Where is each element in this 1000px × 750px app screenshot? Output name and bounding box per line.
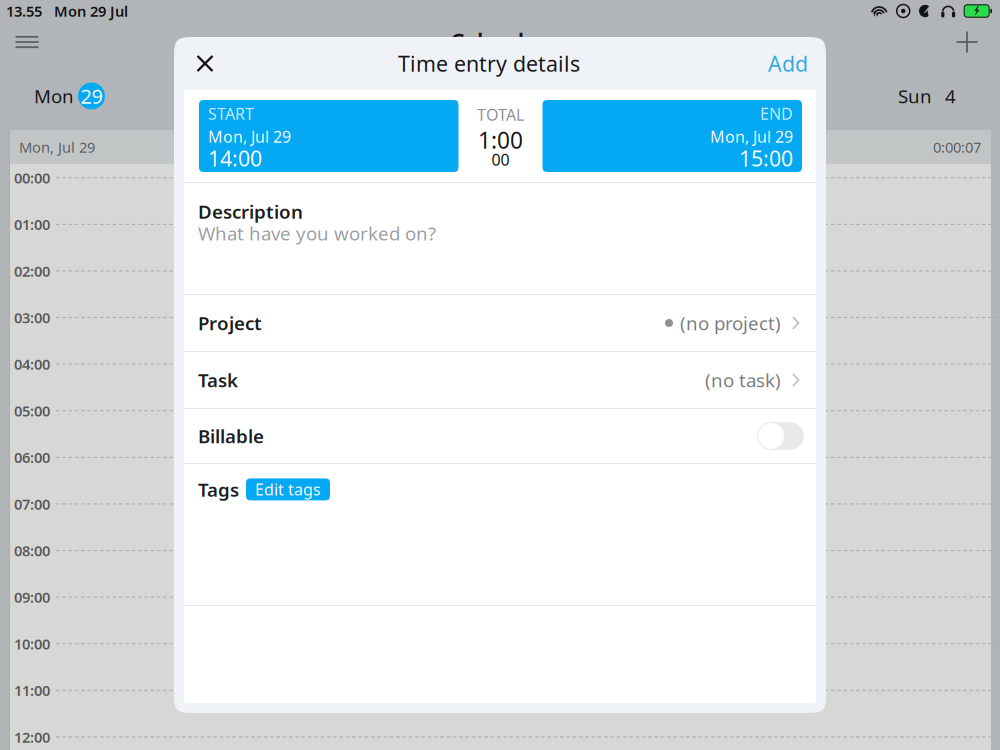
staticText: (no task) (705, 368, 781, 392)
staticText: Time entry details (398, 49, 580, 78)
staticText: 1:00 (478, 125, 523, 155)
staticText: 09:00 (14, 587, 50, 607)
staticText: Sun (898, 84, 932, 108)
button[interactable]: Add (752, 42, 808, 84)
staticText: Tags (198, 477, 239, 502)
staticText: 00:00 (14, 168, 50, 187)
staticText: Calendar (450, 27, 547, 57)
staticText: 00 (491, 149, 509, 170)
staticText: 10:00 (14, 634, 50, 653)
staticText: (no project) (680, 311, 781, 335)
staticText: 06:00 (14, 448, 50, 467)
staticText: What have you worked on? (198, 221, 436, 246)
staticText: Description (198, 199, 303, 224)
staticText: Project (198, 311, 262, 335)
staticText: TOTAL (477, 104, 524, 125)
staticText: 02:00 (14, 261, 50, 281)
staticText: Mon 29 Jul (54, 1, 128, 21)
staticText: Edit tags (255, 479, 321, 500)
staticText: 08:00 (14, 541, 50, 560)
staticText: 14:00 (208, 144, 262, 172)
staticText: 12:00 (14, 727, 50, 747)
staticText: START (208, 103, 254, 124)
staticText: 13.55 (6, 1, 42, 21)
staticText: Billable (198, 424, 264, 448)
button[interactable]: Project (184, 295, 816, 351)
staticText: 05:00 (14, 401, 50, 420)
button[interactable]: START (199, 100, 458, 172)
staticText: Task (198, 368, 238, 392)
button[interactable]: Edit tags (246, 478, 330, 500)
staticText: 0:00:07 (933, 137, 981, 157)
staticText: Mon, Jul 29 (208, 126, 291, 147)
button[interactable]: Menu (4, 22, 50, 62)
staticText: 29 (80, 83, 102, 109)
button[interactable]: END (542, 100, 802, 172)
button[interactable]: Description (184, 183, 816, 294)
staticText: END (760, 103, 793, 124)
button[interactable]: Add entry (947, 22, 987, 62)
staticText: 07:00 (14, 494, 50, 514)
staticText: Mon, Jul 29 (710, 126, 793, 147)
button[interactable]: Close (184, 42, 226, 84)
staticText: 04:00 (14, 354, 50, 374)
staticText: Mon, Jul 29 (19, 137, 95, 157)
staticText: 01:00 (14, 215, 50, 234)
button[interactable]: Task (184, 352, 816, 408)
staticText: Mon (34, 84, 74, 108)
button[interactable]: Billable (184, 409, 816, 463)
staticText: 11:00 (14, 681, 50, 700)
staticText: 03:00 (14, 308, 50, 327)
staticText: Add (768, 49, 808, 78)
staticText: 15:00 (739, 144, 793, 172)
staticText: 4 (945, 84, 956, 108)
